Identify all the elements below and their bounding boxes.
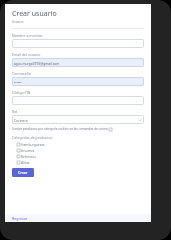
staticText: Código PIN (12, 90, 31, 95)
button[interactable]: Insumos (12, 147, 144, 153)
staticText: Crear (18, 170, 28, 175)
other: Abrir lista de roles (138, 118, 142, 122)
button[interactable] (12, 96, 144, 105)
button[interactable]: Crear (12, 168, 34, 177)
staticText: Cocinero (14, 118, 28, 122)
button[interactable] (12, 39, 144, 48)
staticText: Usuario (12, 20, 24, 24)
staticText: Regresar (12, 216, 28, 221)
staticText: Crear usuario (12, 9, 57, 19)
button[interactable]: •••••• (12, 77, 144, 86)
button[interactable]: Cocinero (12, 115, 144, 124)
button[interactable]: agus.murga0793@gmail.com (12, 58, 144, 67)
staticText: agus.murga0793@gmail.com (14, 61, 60, 65)
button[interactable]: Alitas (12, 159, 144, 165)
staticText: Categorías de productos (12, 135, 53, 140)
staticText: Nombre a mostrar (12, 33, 43, 38)
staticText: Insumos (21, 148, 35, 152)
staticText: Alitas (21, 160, 30, 164)
staticText: Hamburguesas (21, 142, 45, 146)
button[interactable]: Limitar productos por categoría visibles… (12, 127, 144, 131)
button[interactable]: Refrescos (12, 153, 144, 159)
staticText: Contraseña (12, 71, 31, 76)
staticText: Limitar productos por categoría visibles… (12, 127, 108, 131)
staticText: Refrescos (21, 154, 36, 158)
button[interactable]: Regresar (5, 215, 30, 222)
staticText: Rol (12, 109, 18, 114)
button[interactable]: Hamburguesas (12, 141, 144, 147)
staticText: •••••• (14, 80, 22, 84)
staticText: Email del usuario (12, 52, 41, 57)
